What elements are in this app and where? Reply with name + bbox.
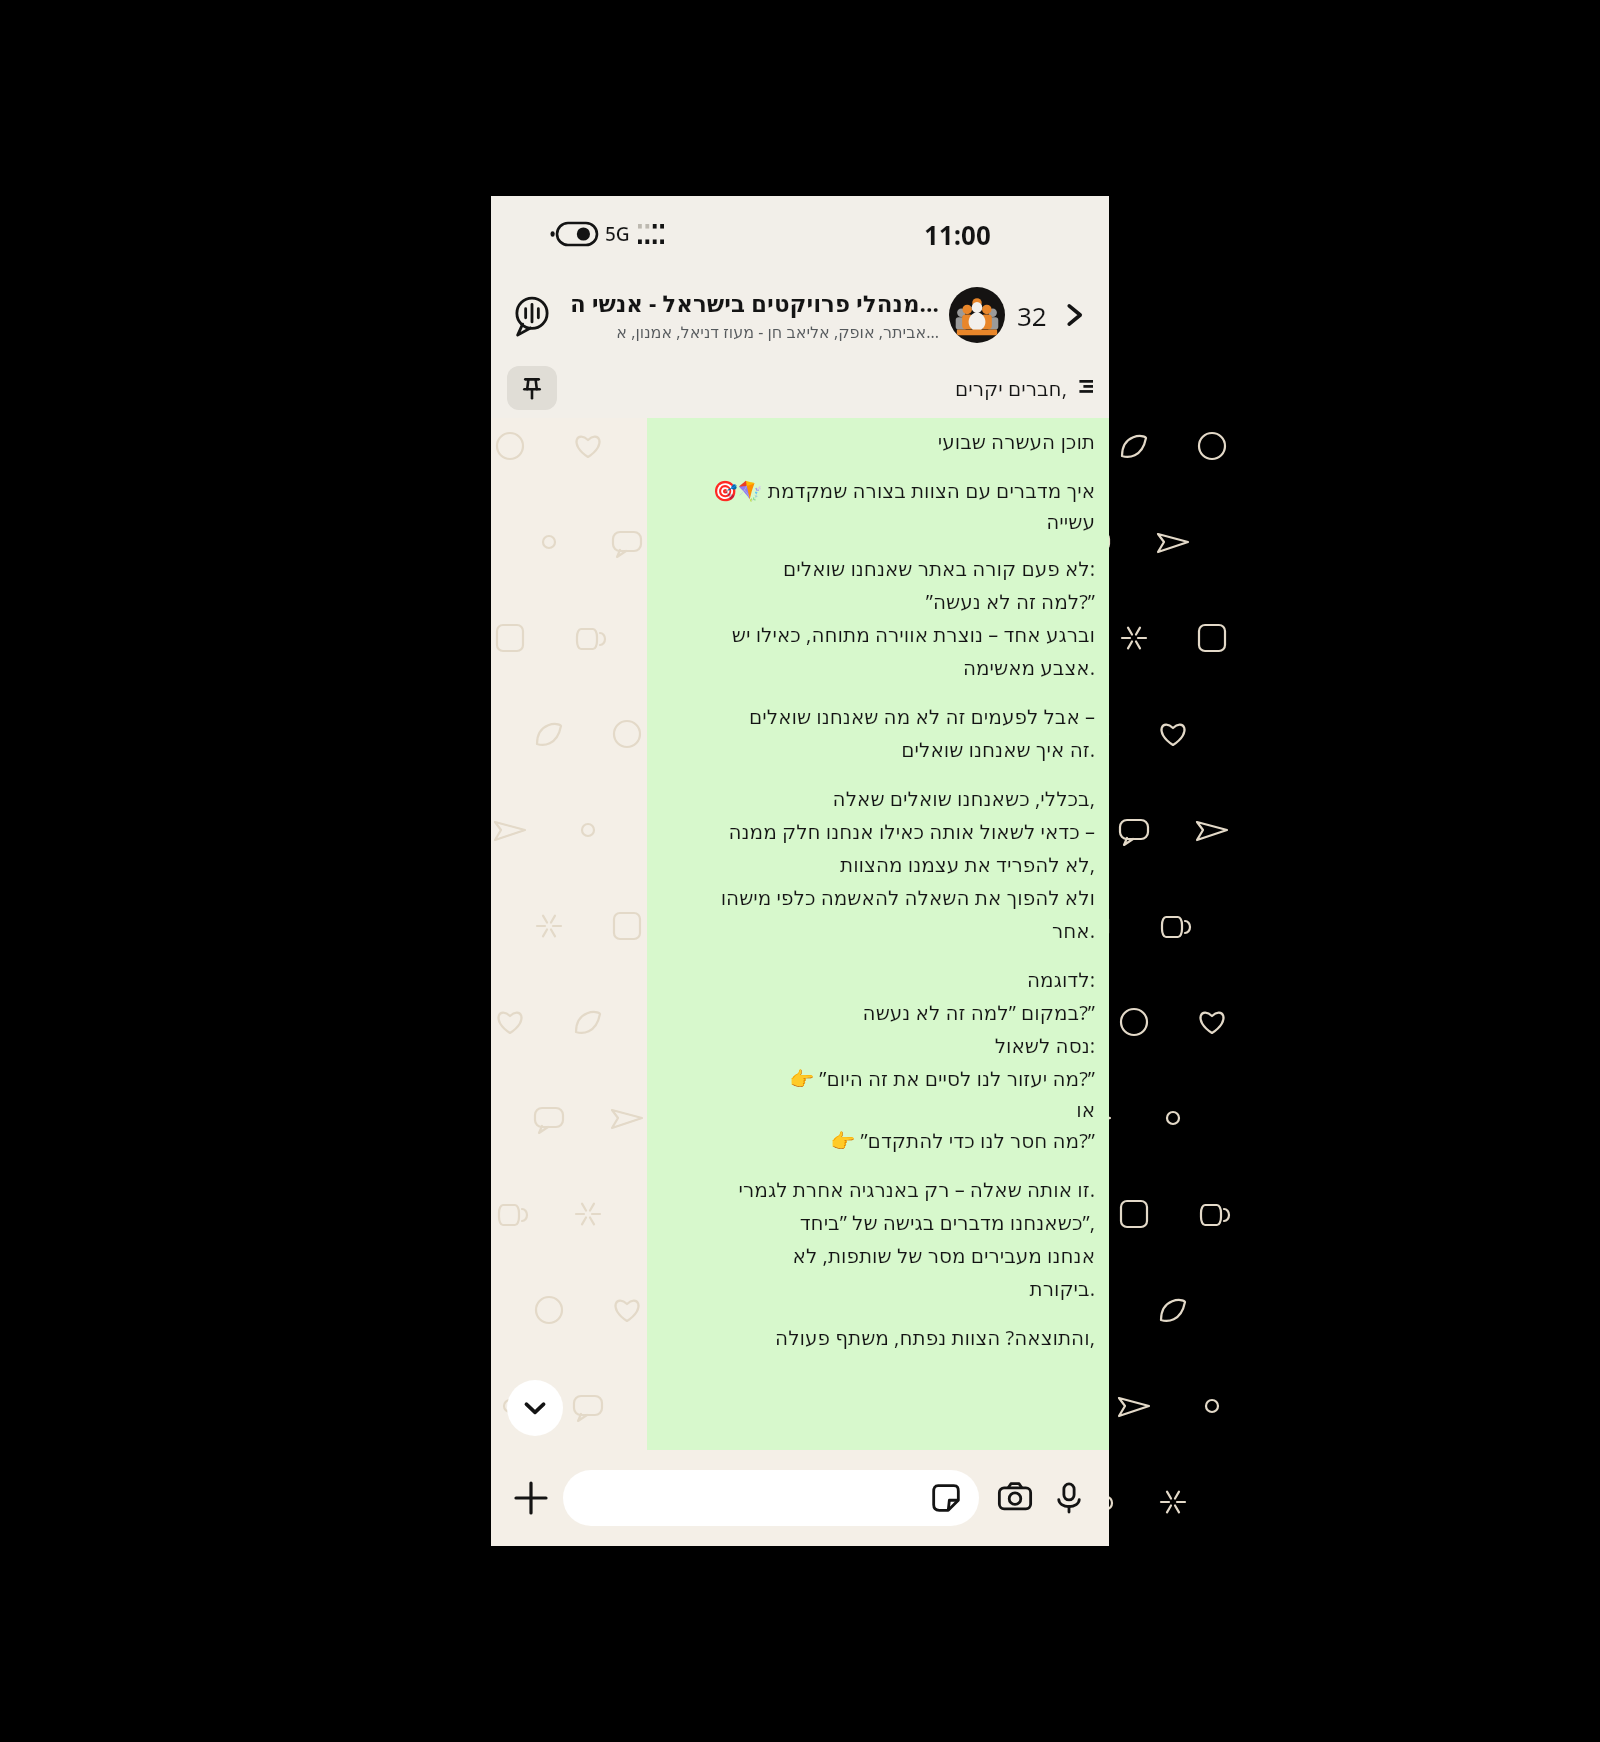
button[interactable]: Group photo: [949, 287, 1005, 343]
button[interactable]: Scroll to bottom: [507, 1380, 563, 1436]
staticText: או: [661, 1098, 1095, 1121]
staticText: כדאי לשאול אותה כאילו אנחנו חלק ממנה –: [661, 818, 1095, 845]
staticText: ביקורת.: [661, 1275, 1095, 1302]
staticText: אבל לפעמים זה לא מה שאנחנו שואלים –: [661, 703, 1095, 730]
staticText: לדוגמה:: [661, 966, 1095, 993]
staticText: אביתר, אופק, אליאב חן - מעוז דניאל, אמנו…: [616, 321, 939, 343]
staticText: וברגע אחד – נוצרת אווירה מתוחה, כאילו יש: [661, 621, 1095, 648]
button[interactable]: Voice chat: [509, 292, 555, 338]
button[interactable]: Voice chat: [491, 272, 1109, 358]
staticText: 🎯🪁 איך מדברים עם הצוות בצורה שמקדמת: [661, 477, 1095, 504]
button[interactable]: Open: [1057, 298, 1091, 332]
staticText: בכללי, כשאנחנו שואלים שאלה,: [661, 785, 1095, 812]
staticText: עשייה: [661, 510, 1095, 533]
staticText: זה איך שאנחנו שואלים.: [661, 736, 1095, 763]
staticText: והתוצאה? הצוות נפתח, משתף פעולה,: [661, 1324, 1095, 1351]
staticText: לא פעם קורה באתר שאנחנו שואלים:: [661, 555, 1095, 582]
staticText: 👉 ”מה יעזור לנו לסיים את זה היום?”: [661, 1065, 1095, 1092]
staticText: חברים יקרים,: [955, 375, 1067, 402]
button[interactable]: Attach: [507, 1474, 555, 1522]
staticText: 👉 ”מה חסר לנו כדי להתקדם?”: [661, 1127, 1095, 1154]
staticText: 5G: [605, 221, 630, 247]
staticText: כשאנחנו מדברים בגישה של ”ביחד”,: [661, 1209, 1095, 1236]
staticText: אצבע מאשימה.: [661, 654, 1095, 681]
staticText: אנחנו מעבירים מסר של שותפות, לא: [661, 1242, 1095, 1269]
staticText: במקום ”למה זה לא נעשה?”: [661, 999, 1095, 1026]
staticText: זו אותה שאלה – רק באנרגיה אחרת לגמרי.: [661, 1176, 1095, 1203]
staticText: אחר.: [661, 917, 1095, 944]
button[interactable]: Voice message: [1045, 1474, 1093, 1522]
button[interactable]: Stickers: [929, 1481, 963, 1515]
button[interactable]: Camera: [991, 1474, 1039, 1522]
staticText: ”למה זה לא נעשה?”: [661, 588, 1095, 615]
staticText: תוכן העשרה שבועי: [661, 428, 1095, 455]
staticText: 32: [1017, 298, 1047, 333]
staticText: מנהלי פרויקטים בישראל - אנשי ה...: [569, 287, 939, 318]
staticText: לא להפריד את עצמנו מהצוות,: [661, 851, 1095, 878]
staticText: נסה לשאול:: [661, 1032, 1095, 1059]
staticText: 11:00: [924, 217, 991, 252]
button[interactable]: תוכן העשרה שבועי: [647, 418, 1109, 1450]
button[interactable]: Pinned messages: [507, 366, 557, 410]
staticText: ולא להפוך את השאלה להאשמה כלפי מישהו: [661, 884, 1095, 911]
button[interactable]: Stickers: [563, 1470, 979, 1526]
